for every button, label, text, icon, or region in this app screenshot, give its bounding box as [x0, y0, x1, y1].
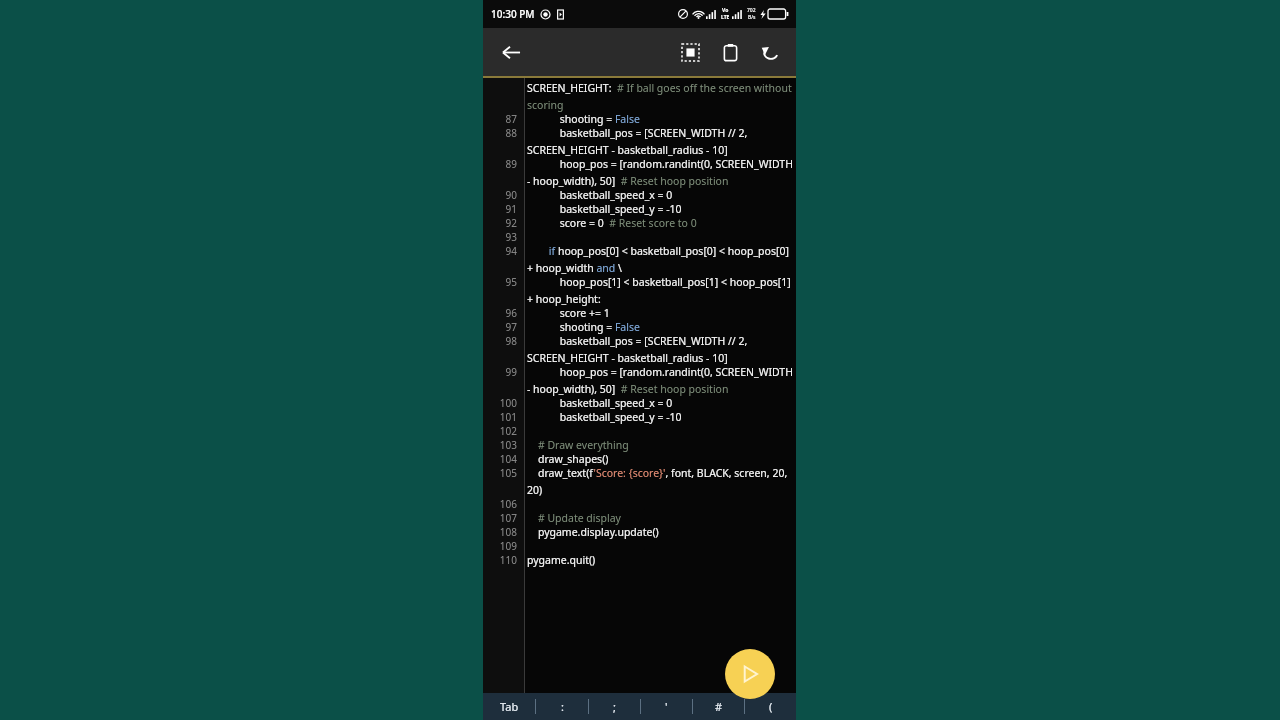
button[interactable]: '	[641, 693, 692, 720]
button[interactable]: Back	[493, 34, 529, 70]
staticText: Tab	[500, 699, 519, 714]
staticText: shooting = False	[527, 112, 794, 126]
staticText: 94	[483, 244, 517, 258]
staticText: ;	[613, 699, 616, 714]
staticText: 103	[483, 438, 517, 452]
staticText: basketball_speed_x = 0	[527, 188, 794, 202]
staticText: basketball_pos = [SCREEN_WIDTH // 2, SCR…	[527, 334, 794, 365]
staticText: 104	[483, 452, 517, 466]
staticText: pygame.quit()	[527, 553, 794, 567]
staticText: 107	[483, 511, 517, 525]
button[interactable]: Tab	[483, 693, 535, 720]
staticText: draw_shapes()	[527, 452, 794, 466]
staticText: hoop_pos[1] < basketball_pos[1] < hoop_p…	[527, 275, 794, 306]
staticText: basketball_speed_y = -10	[527, 202, 794, 216]
staticText: hoop_pos = [random.randint(0, SCREEN_WID…	[527, 365, 794, 396]
button[interactable]: Select all	[670, 32, 710, 72]
staticText: #	[715, 699, 723, 714]
staticText: hoop_pos = [random.randint(0, SCREEN_WID…	[527, 157, 794, 188]
staticText: 96	[483, 306, 517, 320]
button[interactable]: (	[745, 693, 796, 720]
staticText: (	[769, 699, 773, 714]
button[interactable]: Undo	[750, 32, 790, 72]
button[interactable]: Run	[725, 649, 775, 699]
staticText: 100	[483, 396, 517, 410]
staticText: score = 0 # Reset score to 0	[527, 216, 794, 230]
staticText: 89	[483, 157, 517, 171]
staticText: 109	[483, 539, 517, 553]
staticText: 90	[483, 188, 517, 202]
staticText: 88	[483, 126, 517, 140]
staticText: 105	[483, 466, 517, 480]
staticText: pygame.display.update()	[527, 525, 794, 539]
staticText: :	[561, 699, 564, 714]
staticText: 93	[483, 230, 517, 244]
staticText: basketball_pos = [SCREEN_WIDTH // 2, SCR…	[527, 126, 794, 157]
staticText: 92	[483, 216, 517, 230]
staticText: LTE	[721, 14, 730, 21]
staticText: Vo	[722, 7, 729, 14]
staticText: 101	[483, 410, 517, 424]
staticText: 10:30 PM	[491, 7, 535, 21]
staticText: 702	[747, 7, 756, 14]
staticText: score += 1	[527, 306, 794, 320]
staticText: 97	[483, 320, 517, 334]
button[interactable]: Paste	[710, 32, 750, 72]
staticText: SCREEN_HEIGHT: # If ball goes off the sc…	[527, 81, 794, 112]
staticText: shooting = False	[527, 320, 794, 334]
staticText: B/s	[748, 14, 756, 21]
button[interactable]: ;	[589, 693, 640, 720]
staticText: # Draw everything	[527, 438, 794, 452]
staticText: 87	[483, 112, 517, 126]
staticText: 108	[483, 525, 517, 539]
staticText: basketball_speed_y = -10	[527, 410, 794, 424]
staticText: basketball_speed_x = 0	[527, 396, 794, 410]
button[interactable]: #	[693, 693, 744, 720]
staticText: 99	[483, 365, 517, 379]
staticText: 102	[483, 424, 517, 438]
staticText: '	[665, 699, 668, 714]
button[interactable]: :	[536, 693, 588, 720]
staticText: 98	[483, 334, 517, 348]
staticText: 106	[483, 497, 517, 511]
staticText: draw_text(f'Score: {score}', font, BLACK…	[527, 466, 794, 497]
staticText: if hoop_pos[0] < basketball_pos[0] < hoo…	[527, 244, 794, 275]
staticText: # Update display	[527, 511, 794, 525]
staticText: 91	[483, 202, 517, 216]
staticText: 95	[483, 275, 517, 289]
staticText: 110	[483, 553, 517, 567]
